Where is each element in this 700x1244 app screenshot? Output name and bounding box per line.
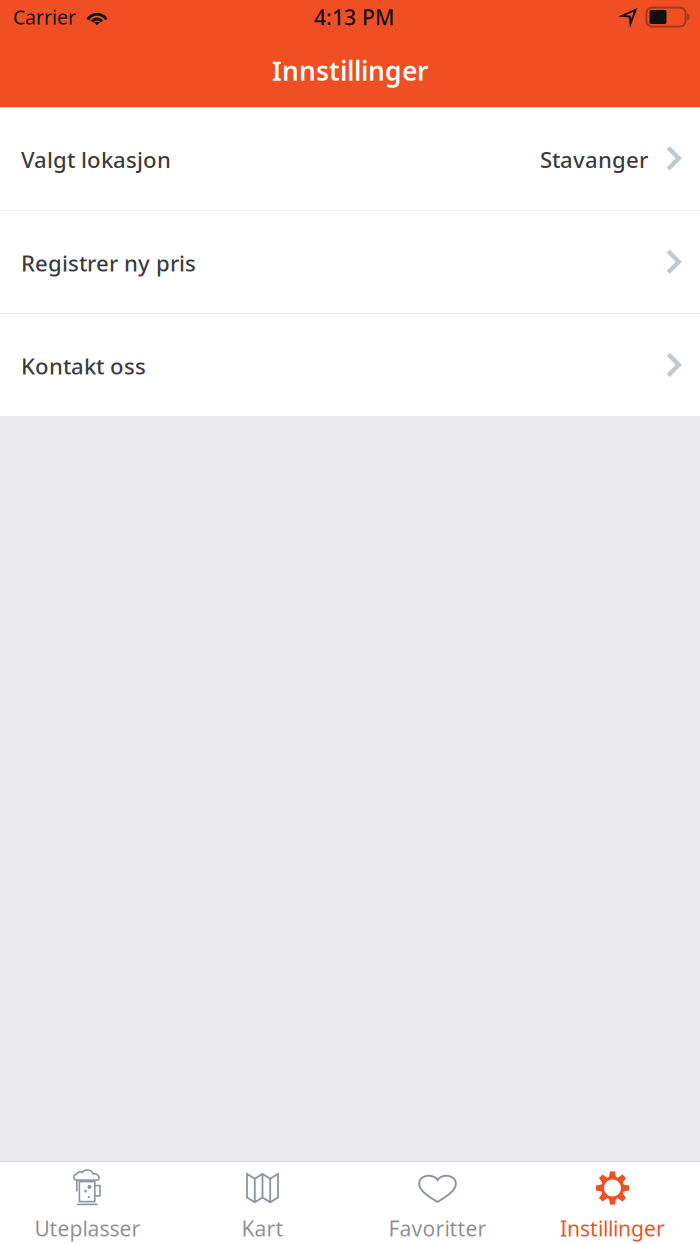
button[interactable]: Registrer ny pris (0, 211, 700, 313)
staticText: Carrier (13, 4, 76, 30)
staticText: Uteplasser (34, 1214, 140, 1243)
staticText: Kontakt oss (21, 351, 146, 381)
staticText: Stavanger (540, 144, 648, 174)
staticText: Favoritter (388, 1214, 486, 1243)
staticText: Valgt lokasjon (21, 144, 171, 174)
staticText: Instillinger (560, 1214, 665, 1243)
button[interactable]: Favoritter (350, 1161, 525, 1244)
button[interactable]: Instillinger (525, 1161, 700, 1244)
button[interactable]: Kontakt oss (0, 314, 700, 416)
staticText: Innstillinger (272, 52, 428, 88)
staticText: 4:13 PM (314, 3, 394, 31)
button[interactable]: Kart (175, 1161, 350, 1244)
staticText: Registrer ny pris (21, 248, 196, 278)
staticText: Kart (241, 1214, 283, 1243)
button[interactable]: Valgt lokasjon (0, 107, 700, 210)
button[interactable]: Uteplasser (0, 1161, 175, 1244)
